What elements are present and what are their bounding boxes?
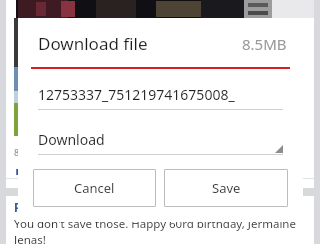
staticText: Download xyxy=(38,130,105,149)
staticText: 8.5MB xyxy=(242,34,287,54)
staticText: You don't save those. Happy 60rd birthda… xyxy=(14,216,296,232)
button[interactable]: Like xyxy=(12,160,30,178)
staticText: P xyxy=(14,199,22,215)
staticText: 12753337_751219741675008_ xyxy=(38,85,235,104)
staticText: 8 xyxy=(14,146,20,158)
staticText: Save xyxy=(212,179,241,197)
button[interactable]: Cancel xyxy=(33,169,156,207)
staticText: Jenas! xyxy=(14,232,46,244)
button[interactable]: Save xyxy=(164,169,288,207)
button[interactable]: 12753337_751219741675008_ xyxy=(38,85,283,110)
staticText: Cancel xyxy=(74,179,115,197)
button[interactable]: Download xyxy=(38,130,283,155)
staticText: Download file xyxy=(38,32,148,55)
